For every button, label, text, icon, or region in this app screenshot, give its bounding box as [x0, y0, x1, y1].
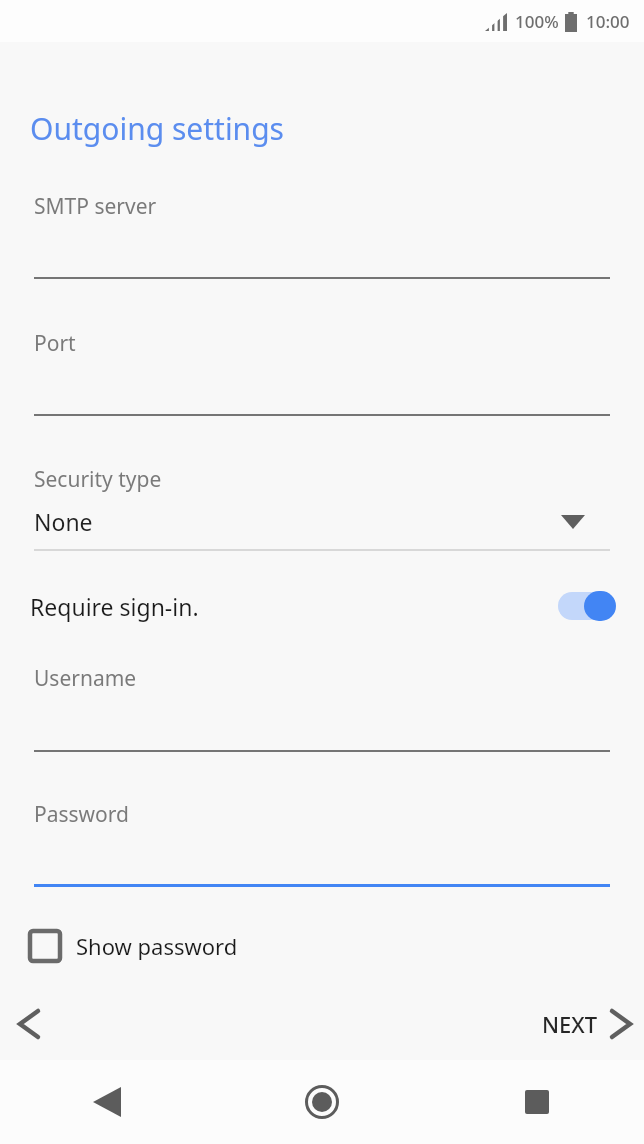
- staticText: 10:00: [586, 10, 630, 33]
- staticText: None: [34, 506, 93, 537]
- staticText: Outgoing settings: [30, 108, 284, 149]
- staticText: NEXT: [542, 1009, 598, 1039]
- button[interactable]: Back: [0, 995, 58, 1053]
- staticText: Security type: [34, 465, 162, 494]
- staticText: Port: [34, 329, 76, 358]
- button[interactable]: NEXT: [528, 995, 644, 1053]
- button[interactable]: Password: [0, 798, 644, 884]
- button[interactable]: Show password: [0, 918, 254, 974]
- staticText: Require sign-in.: [30, 591, 199, 622]
- staticText: SMTP server: [34, 192, 157, 221]
- staticText: 100%: [515, 10, 559, 33]
- button[interactable]: Home: [214, 1060, 429, 1144]
- button[interactable]: Require sign-in.: [0, 578, 644, 634]
- button[interactable]: Security type: [0, 463, 644, 549]
- button[interactable]: SMTP server: [0, 190, 644, 276]
- button[interactable]: Port: [0, 327, 644, 413]
- button[interactable]: Back: [0, 1060, 214, 1144]
- staticText: Password: [34, 800, 129, 829]
- staticText: Username: [34, 664, 137, 693]
- button[interactable]: None: [0, 500, 644, 548]
- button[interactable]: Username: [0, 662, 644, 748]
- button[interactable]: Recents: [429, 1060, 644, 1144]
- staticText: Show password: [76, 931, 238, 961]
